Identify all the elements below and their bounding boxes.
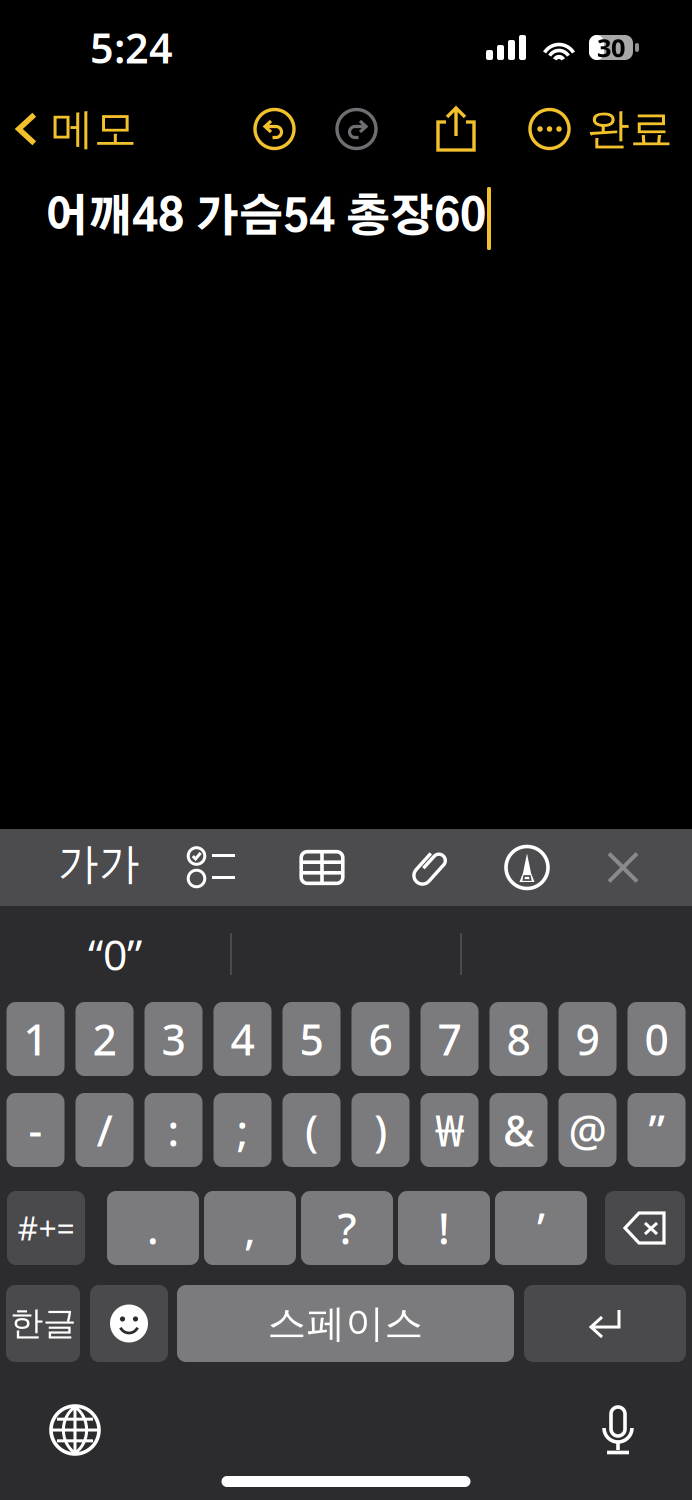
button[interactable]: 7 bbox=[420, 1002, 478, 1076]
button[interactable]: ₩ bbox=[420, 1093, 478, 1167]
staticText: 5:24 bbox=[90, 20, 173, 75]
button[interactable]: Dictation bbox=[586, 1398, 650, 1462]
staticText: 메모 bbox=[51, 103, 137, 155]
staticText: : bbox=[167, 1102, 179, 1158]
button[interactable]: ? bbox=[301, 1191, 393, 1265]
staticText: 2 bbox=[92, 1011, 116, 1067]
staticText: ; bbox=[236, 1102, 248, 1158]
staticText: - bbox=[28, 1102, 42, 1158]
staticText: #+= bbox=[17, 1207, 74, 1249]
staticText: 한글 bbox=[10, 1303, 76, 1344]
staticText: 1 bbox=[23, 1011, 47, 1067]
staticText: 가가 bbox=[58, 846, 140, 889]
button[interactable]: Delete bbox=[605, 1191, 685, 1265]
staticText: ? bbox=[337, 1200, 356, 1256]
button[interactable]: Undo bbox=[249, 103, 300, 154]
staticText: 8 bbox=[506, 1011, 530, 1067]
button[interactable]: Hide toolbar bbox=[582, 829, 664, 906]
staticText: ) bbox=[374, 1102, 387, 1158]
button[interactable]: Emoji bbox=[90, 1285, 168, 1362]
staticText: ’ bbox=[537, 1200, 545, 1256]
staticText: ! bbox=[438, 1200, 450, 1256]
staticText: @ bbox=[568, 1102, 606, 1158]
button[interactable]: ! bbox=[398, 1191, 490, 1265]
staticText: 0 bbox=[644, 1011, 668, 1067]
button[interactable]: 0 bbox=[627, 1002, 685, 1076]
button[interactable]: ’ bbox=[495, 1191, 587, 1265]
staticText: / bbox=[96, 1102, 112, 1158]
staticText: 어깨48 가슴54 총장60 bbox=[44, 196, 486, 240]
staticText: 스페이스 bbox=[267, 1300, 423, 1347]
button[interactable]: 8 bbox=[489, 1002, 547, 1076]
button[interactable]: & bbox=[489, 1093, 547, 1167]
button[interactable]: ( bbox=[282, 1093, 340, 1167]
staticText: ( bbox=[305, 1102, 318, 1158]
button[interactable]: 완료 bbox=[575, 97, 685, 161]
button[interactable]: / bbox=[75, 1093, 133, 1167]
button[interactable]: Redo bbox=[331, 103, 382, 154]
staticText: 완료 bbox=[587, 103, 673, 155]
button[interactable]: ) bbox=[351, 1093, 409, 1167]
staticText: 4 bbox=[230, 1011, 254, 1067]
staticText: , bbox=[244, 1200, 256, 1256]
staticText: 6 bbox=[368, 1011, 392, 1067]
button[interactable]: Attach bbox=[387, 829, 469, 906]
button[interactable]: 3 bbox=[144, 1002, 202, 1076]
button[interactable]: ; bbox=[213, 1093, 271, 1167]
staticText: 3 bbox=[161, 1011, 185, 1067]
button[interactable]: 2 bbox=[75, 1002, 133, 1076]
button[interactable]: 4 bbox=[213, 1002, 271, 1076]
button[interactable]: 6 bbox=[351, 1002, 409, 1076]
button[interactable]: Switch keyboard bbox=[43, 1398, 107, 1462]
staticText: & bbox=[503, 1102, 534, 1158]
button[interactable]: Share bbox=[429, 99, 483, 159]
button[interactable]: 한글 bbox=[6, 1285, 80, 1362]
button[interactable]: #+= bbox=[7, 1191, 85, 1265]
button[interactable]: 9 bbox=[558, 1002, 616, 1076]
button[interactable]: Table bbox=[281, 829, 363, 906]
button[interactable]: Markup bbox=[486, 829, 568, 906]
staticText: “0” bbox=[88, 926, 142, 982]
button[interactable]: @ bbox=[558, 1093, 616, 1167]
staticText: ” bbox=[648, 1102, 664, 1158]
button[interactable]: 5 bbox=[282, 1002, 340, 1076]
button[interactable]: ” bbox=[627, 1093, 685, 1167]
button[interactable]: Return bbox=[524, 1285, 686, 1362]
button[interactable]: 메모 bbox=[0, 97, 147, 161]
staticText: 5 bbox=[299, 1011, 323, 1067]
button[interactable]: Checklist bbox=[171, 829, 253, 906]
button[interactable]: “0” bbox=[0, 906, 230, 1002]
button[interactable]: More bbox=[524, 103, 575, 154]
staticText: 9 bbox=[575, 1011, 599, 1067]
button[interactable]: - bbox=[6, 1093, 64, 1167]
staticText: ₩ bbox=[435, 1102, 464, 1158]
button[interactable]: , bbox=[204, 1191, 296, 1265]
button[interactable]: . bbox=[107, 1191, 199, 1265]
button[interactable]: : bbox=[144, 1093, 202, 1167]
button[interactable]: 가가 bbox=[58, 829, 140, 906]
staticText: 30 bbox=[597, 31, 625, 64]
staticText: 7 bbox=[437, 1011, 461, 1067]
button[interactable]: 스페이스 bbox=[177, 1285, 514, 1362]
button[interactable]: 1 bbox=[6, 1002, 64, 1076]
staticText: . bbox=[147, 1200, 159, 1256]
